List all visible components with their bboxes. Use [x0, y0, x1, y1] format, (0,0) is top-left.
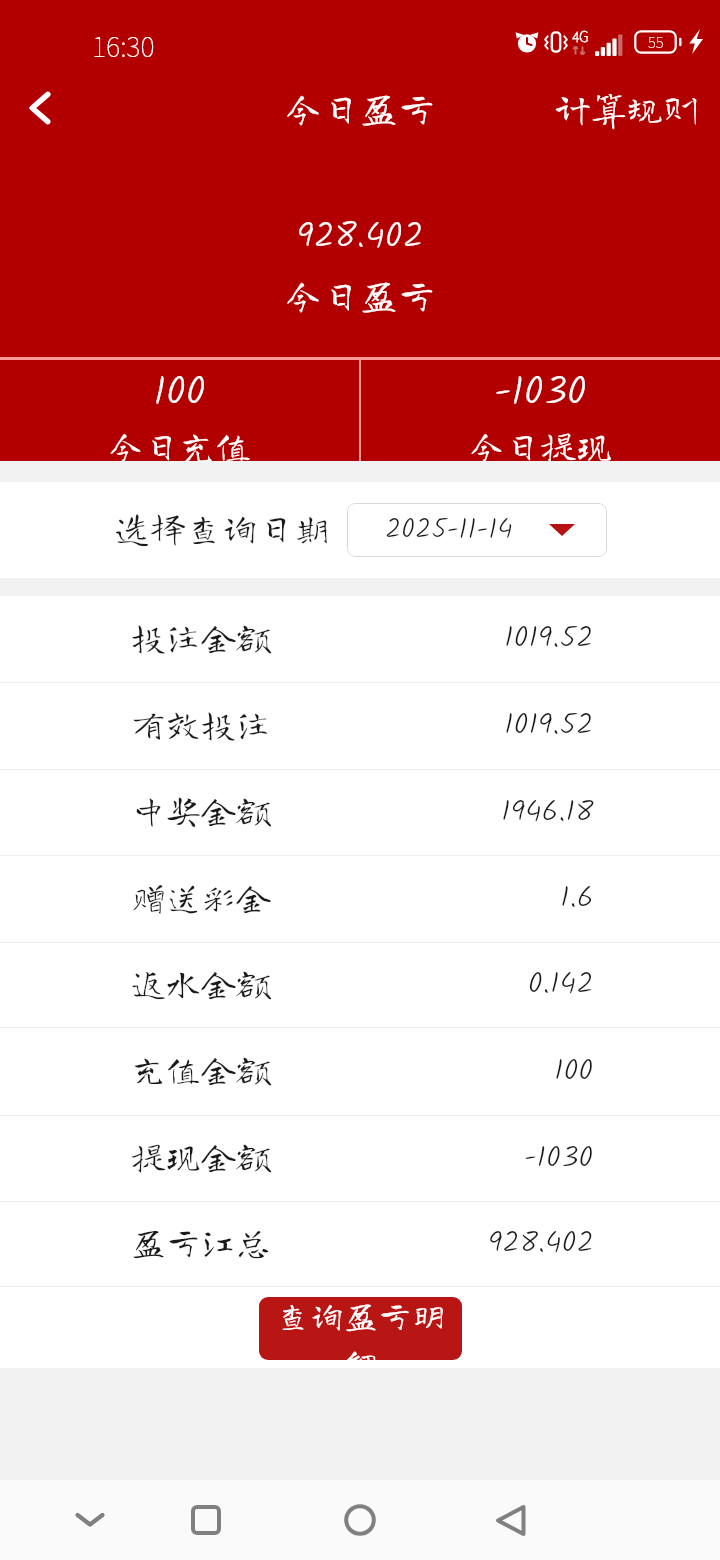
- staticText: 充值金额: [131, 1051, 272, 1086]
- staticText: 4G: [572, 26, 589, 46]
- staticText: 55: [648, 31, 664, 53]
- button[interactable]: Hide keyboard: [45, 1480, 135, 1560]
- staticText: 今日盈亏: [284, 89, 437, 127]
- button[interactable]: Back: [2, 70, 80, 146]
- staticText: 盈亏汇总: [131, 1224, 272, 1259]
- staticText: 选择查询日期: [114, 509, 331, 545]
- staticText: 有效投注: [131, 706, 272, 741]
- staticText: 1019.52: [504, 615, 594, 663]
- staticText: -1030: [524, 1135, 594, 1183]
- staticText: 928.402: [488, 1220, 594, 1268]
- staticText: 计算规则: [555, 90, 700, 126]
- staticText: 赠送彩金: [131, 879, 272, 914]
- button[interactable]: 盈亏汇总: [0, 1202, 720, 1286]
- button[interactable]: 充值金额: [0, 1028, 720, 1115]
- button[interactable]: 查询盈亏明细: [259, 1297, 462, 1360]
- staticText: 100: [0, 361, 359, 425]
- button[interactable]: 赠送彩金: [0, 856, 720, 942]
- button[interactable]: 计算规则: [555, 90, 700, 126]
- staticText: 928.402: [0, 209, 720, 266]
- staticText: 中奖金额: [131, 792, 272, 827]
- staticText: 查询盈亏明细: [271, 1298, 451, 1360]
- staticText: 16:30: [92, 26, 155, 65]
- button[interactable]: 提现金额: [0, 1116, 720, 1201]
- button[interactable]: 投注金额: [0, 596, 720, 682]
- staticText: 今日提现: [361, 427, 720, 463]
- staticText: 2025-11-14: [385, 508, 513, 553]
- staticText: 100: [554, 1048, 594, 1096]
- staticText: 1.6: [560, 875, 594, 923]
- staticText: 1946.18: [501, 789, 594, 837]
- button[interactable]: 中奖金额: [0, 770, 720, 855]
- staticText: 提现金额: [131, 1138, 272, 1173]
- staticText: -1030: [361, 361, 720, 425]
- staticText: 投注金额: [131, 619, 272, 654]
- staticText: 返水金额: [131, 965, 272, 1000]
- staticText: 今日充值: [0, 427, 359, 463]
- button[interactable]: Recent apps: [161, 1480, 251, 1560]
- button[interactable]: Back: [465, 1480, 555, 1560]
- staticText: 今日盈亏: [0, 276, 720, 314]
- button[interactable]: 2025-11-14: [347, 503, 607, 557]
- staticText: 1019.52: [504, 702, 594, 750]
- button[interactable]: Home: [315, 1480, 405, 1560]
- staticText: 0.142: [528, 961, 594, 1009]
- button[interactable]: 有效投注: [0, 683, 720, 769]
- button[interactable]: 返水金额: [0, 943, 720, 1027]
